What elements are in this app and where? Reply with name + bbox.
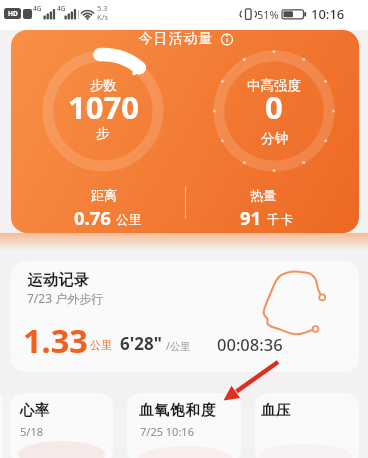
staticText: 热量 [250,187,276,203]
staticText: 51% [257,7,279,22]
staticText: 4G [57,4,66,13]
button[interactable] [11,261,359,372]
button[interactable] [127,393,241,458]
button[interactable] [255,393,359,458]
staticText: 0.76 [74,205,116,230]
staticText: 分钟 [261,130,288,147]
staticText: 1070 [68,86,139,128]
staticText: 步数 [90,77,117,94]
staticText: 公里 [116,212,141,228]
staticText: 公里 [90,338,112,352]
staticText: 千卡 [266,212,294,228]
staticText: 00:08:36 [217,333,283,355]
button[interactable] [10,393,113,458]
staticText: 心率 [20,401,49,419]
staticText: 血压 [261,401,290,419]
staticText: 运动记录 [27,271,89,290]
staticText: /公里 [166,339,191,353]
staticText: 1.33 [23,318,88,362]
staticText: 6'28" [120,332,162,355]
staticText: 距离 [91,187,117,203]
staticText: 7/23 户外步行 [27,290,104,306]
staticText: 5.3 [97,3,108,13]
button[interactable] [11,30,359,233]
staticText: 血氧饱和度 [139,401,217,419]
staticText: 步 [96,125,110,142]
staticText: 4G [33,4,42,13]
staticText: 今日活动量 [138,30,213,48]
staticText: 5/18 [20,424,43,439]
staticText: 10:16 [311,5,345,23]
staticText: 7/25 10:16 [140,424,194,439]
staticText: HD [8,9,18,18]
staticText: 91 [240,205,266,230]
staticText: 中高强度 [247,77,301,94]
staticText: K/s [97,12,109,22]
staticText: 0 [265,86,283,128]
